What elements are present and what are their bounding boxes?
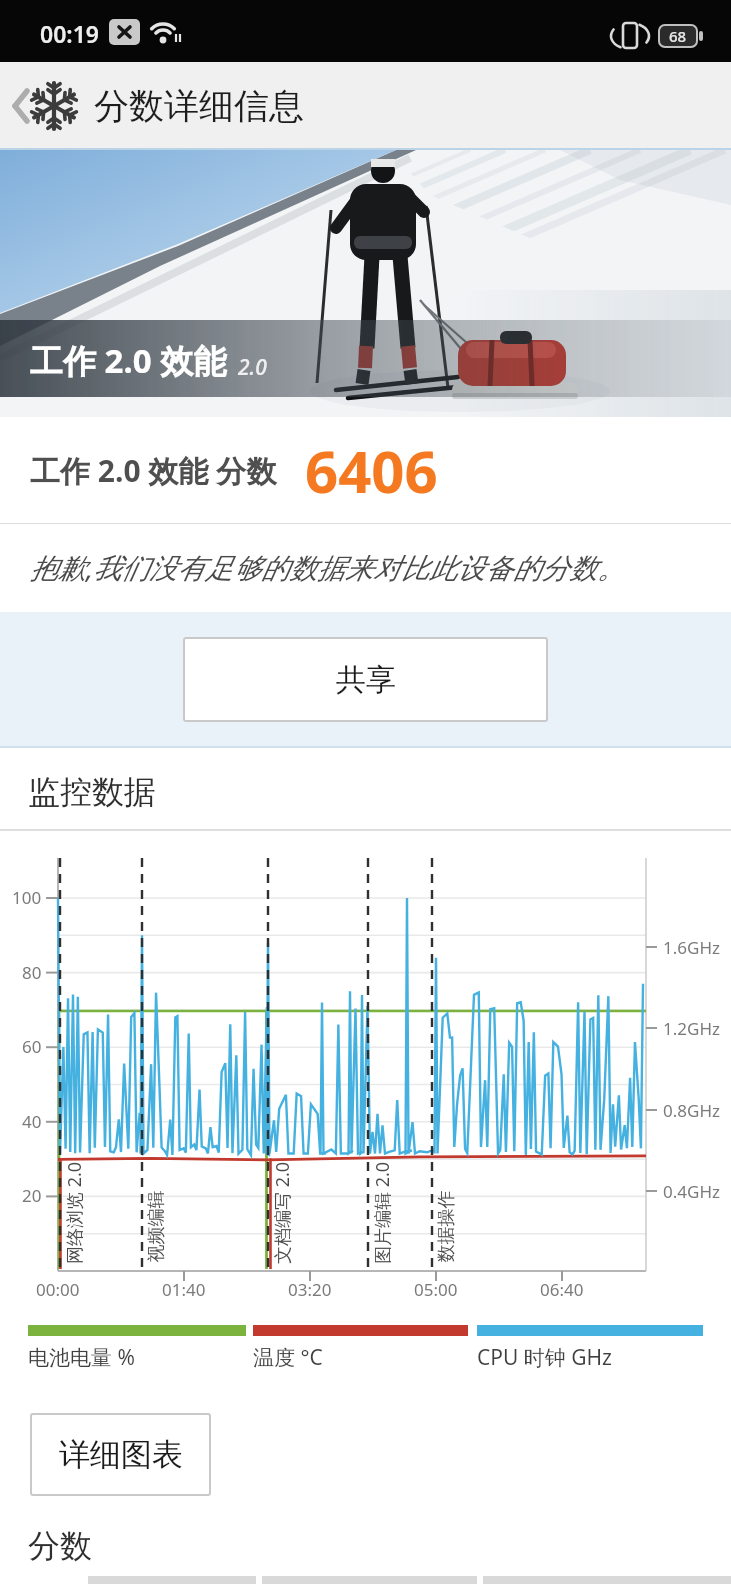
staticText: 00:19	[40, 18, 99, 49]
staticText: 06:40	[540, 1278, 584, 1301]
staticText: 数据操作	[434, 1190, 457, 1262]
staticText: 工作 2.0 效能	[30, 338, 227, 383]
staticText: 1.2GHz	[663, 1017, 720, 1040]
staticText: 抱歉,我们没有足够的数据来对比此设备的分数。	[30, 548, 626, 586]
staticText: 分数	[28, 1526, 92, 1566]
staticText: 60	[22, 1035, 42, 1058]
staticText: 1.6GHz	[663, 936, 720, 959]
staticText: 视频编辑	[144, 1190, 167, 1262]
staticText: 共享	[336, 661, 396, 699]
staticText: 03:20	[288, 1278, 332, 1301]
staticText: 40	[22, 1110, 42, 1133]
staticText: 工作 2.0 效能 分数	[30, 450, 277, 491]
button[interactable]: 详细图表	[30, 1413, 211, 1496]
staticText: 01:40	[162, 1278, 206, 1301]
staticText: 详细图表	[59, 1435, 183, 1474]
staticText: 图片编辑 2.0	[370, 1161, 395, 1264]
staticText: 2.0	[238, 353, 267, 382]
staticText: 05:00	[414, 1278, 458, 1301]
button[interactable]: 共享	[183, 637, 548, 722]
staticText: 6406	[305, 431, 438, 510]
button[interactable]: 分数详细信息	[6, 62, 304, 150]
staticText: 80	[22, 961, 42, 984]
staticText: 监控数据	[28, 772, 156, 812]
staticText: 68	[669, 26, 687, 46]
staticText: CPU 时钟 GHz	[477, 1343, 612, 1372]
staticText: 20	[22, 1184, 42, 1207]
staticText: 100	[12, 886, 42, 909]
staticText: 网络浏览 2.0	[62, 1161, 87, 1264]
staticText: 温度 °C	[253, 1343, 323, 1372]
staticText: 电池电量 %	[28, 1343, 135, 1372]
staticText: 0.8GHz	[663, 1099, 720, 1122]
staticText: 文档编写 2.0	[270, 1161, 295, 1264]
staticText: 分数详细信息	[94, 84, 304, 128]
staticText: 0.4GHz	[663, 1180, 720, 1203]
staticText: 00:00	[36, 1278, 80, 1301]
